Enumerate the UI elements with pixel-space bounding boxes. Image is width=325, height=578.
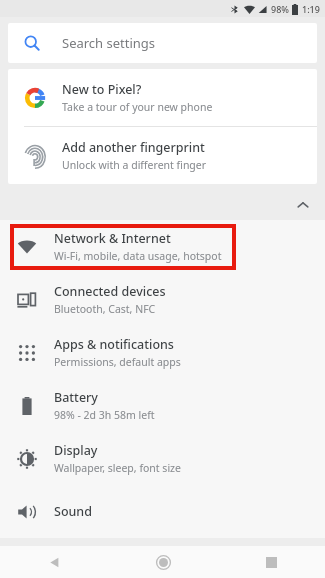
staticText: Unlock with a different finger (62, 158, 207, 172)
staticText: Bluetooth, Cast, NFC (54, 302, 156, 316)
button[interactable]: Sound (0, 485, 325, 538)
button[interactable]: Back (0, 546, 109, 578)
button[interactable]: Recent apps (217, 546, 325, 578)
staticText: Sound (54, 503, 92, 520)
staticText: Add another fingerprint (62, 139, 205, 156)
button[interactable]: Search (8, 23, 317, 63)
button[interactable]: Network & Internet (0, 220, 325, 273)
staticText: New to Pixel? (62, 81, 142, 98)
button[interactable]: Apps & notifications (0, 326, 325, 379)
staticText: Network & Internet (54, 230, 171, 247)
staticText: 98% - 2d 3h 58m left (54, 408, 155, 422)
staticText: Display (54, 442, 98, 459)
button[interactable]: New to Pixel? (8, 69, 317, 126)
staticText: Battery (54, 389, 98, 406)
staticText: Connected devices (54, 283, 166, 300)
button[interactable]: Battery (0, 379, 325, 432)
button[interactable]: Connected devices (0, 273, 325, 326)
staticText: Search settings (62, 34, 156, 52)
button[interactable]: Home (109, 546, 217, 578)
staticText: Apps & notifications (54, 336, 174, 353)
button[interactable]: Add another fingerprint (8, 127, 317, 184)
button[interactable]: Collapse suggestions (290, 192, 316, 218)
staticText: Wallpaper, sleep, font size (54, 461, 181, 475)
staticText: 1:19 (302, 3, 320, 15)
staticText: 98% (271, 3, 289, 15)
other: Search (24, 35, 40, 51)
staticText: Wi-Fi, mobile, data usage, hotspot (54, 249, 222, 263)
button[interactable]: Display (0, 432, 325, 485)
staticText: Take a tour of your new phone (62, 100, 213, 114)
staticText: Permissions, default apps (54, 355, 181, 369)
